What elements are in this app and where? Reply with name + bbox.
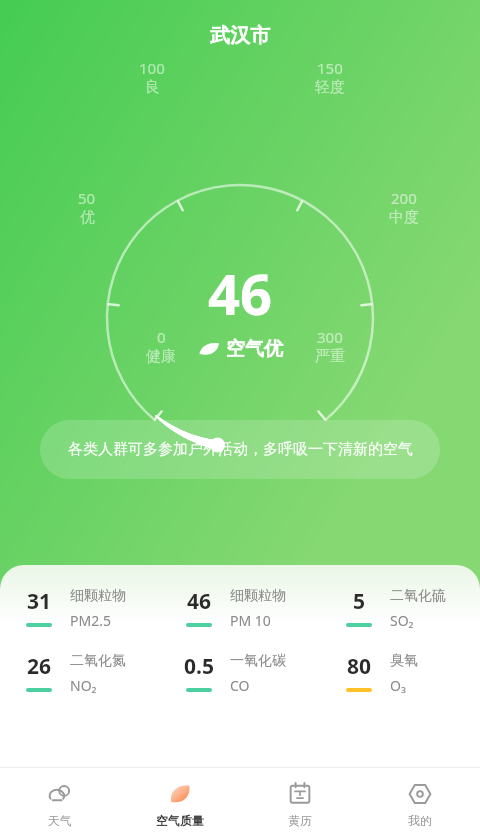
staticText: 150 bbox=[317, 58, 343, 78]
staticText: 80 bbox=[347, 652, 372, 681]
button[interactable]: 26 bbox=[0, 652, 160, 695]
button[interactable]: 46 bbox=[160, 587, 320, 630]
staticText: 46 bbox=[208, 255, 273, 331]
staticText: 黄历 bbox=[288, 813, 312, 828]
staticText: 46 bbox=[187, 587, 212, 616]
button[interactable]: 0.5 bbox=[160, 652, 320, 695]
staticText: 26 bbox=[27, 652, 52, 681]
button[interactable]: 天气 bbox=[0, 768, 120, 840]
button[interactable]: 80 bbox=[320, 652, 480, 695]
staticText: PM 10 bbox=[230, 611, 271, 630]
staticText: 天气 bbox=[48, 813, 72, 828]
staticText: 200 bbox=[391, 188, 417, 208]
button[interactable]: 黄历 bbox=[240, 768, 360, 840]
button[interactable]: 我的 bbox=[360, 768, 480, 840]
staticText: 空气质量 bbox=[156, 813, 204, 828]
staticText: 5 bbox=[353, 587, 366, 616]
staticText: PM2.5 bbox=[70, 611, 111, 630]
staticText: 31 bbox=[27, 587, 52, 616]
staticText: 二氧化氮 bbox=[70, 652, 126, 670]
staticText: 细颗粒物 bbox=[230, 587, 286, 605]
staticText: O₃ bbox=[390, 676, 406, 695]
staticText: 我的 bbox=[408, 813, 432, 828]
staticText: 300 bbox=[317, 327, 343, 347]
staticText: 中度 bbox=[389, 208, 419, 227]
staticText: CO bbox=[230, 676, 250, 695]
button[interactable]: 各类人群可多参加户外活动，多呼吸一下清新的空气 bbox=[40, 420, 440, 479]
staticText: 50 bbox=[78, 188, 96, 208]
staticText: 良 bbox=[145, 78, 160, 97]
staticText: SO₂ bbox=[390, 611, 414, 630]
staticText: 臭氧 bbox=[390, 652, 418, 670]
staticText: 0.5 bbox=[184, 652, 214, 681]
staticText: NO₂ bbox=[70, 676, 97, 695]
staticText: 严重 bbox=[315, 347, 345, 366]
staticText: 各类人群可多参加户外活动，多呼吸一下清新的空气 bbox=[68, 440, 413, 459]
staticText: 100 bbox=[139, 58, 165, 78]
staticText: 武汉市 bbox=[210, 23, 270, 48]
button[interactable]: 31 bbox=[0, 587, 160, 630]
staticText: 0 bbox=[157, 327, 166, 347]
staticText: 优 bbox=[80, 208, 95, 227]
staticText: 二氧化硫 bbox=[390, 587, 446, 605]
button[interactable]: 空气质量 bbox=[120, 768, 240, 840]
button[interactable]: 5 bbox=[320, 587, 480, 630]
staticText: 健康 bbox=[146, 347, 176, 366]
staticText: 细颗粒物 bbox=[70, 587, 126, 605]
staticText: 空气优 bbox=[226, 337, 283, 361]
staticText: 轻度 bbox=[315, 78, 345, 97]
staticText: 一氧化碳 bbox=[230, 652, 286, 670]
